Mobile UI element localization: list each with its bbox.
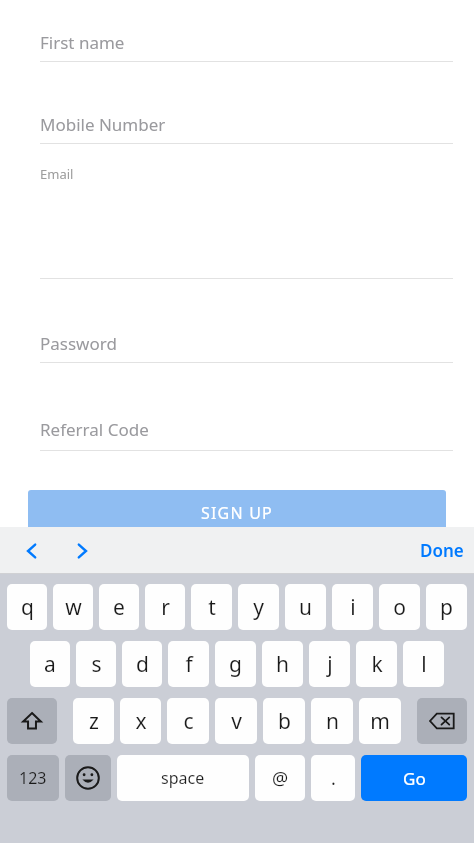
button[interactable]: Go — [361, 755, 467, 801]
button[interactable]: Emoji — [65, 755, 111, 801]
button[interactable]: Backspace — [417, 698, 467, 744]
staticText: Email — [40, 165, 74, 183]
staticText: i — [350, 593, 356, 622]
staticText: o — [393, 593, 406, 622]
staticText: c — [183, 707, 194, 736]
staticText: x — [135, 707, 147, 736]
staticText: r — [161, 593, 170, 622]
staticText: m — [370, 707, 390, 736]
staticText: e — [113, 593, 125, 622]
button[interactable]: a — [30, 641, 70, 687]
staticText: d — [136, 650, 149, 679]
button[interactable]: n — [311, 698, 353, 744]
staticText: Password — [40, 332, 117, 355]
staticText: Go — [403, 767, 426, 790]
staticText: t — [208, 593, 216, 622]
button[interactable]: l — [403, 641, 444, 687]
button[interactable]: v — [215, 698, 257, 744]
button[interactable]: k — [356, 641, 397, 687]
staticText: j — [327, 650, 333, 679]
staticText: f — [185, 650, 193, 679]
staticText: a — [44, 650, 56, 679]
button[interactable]: SIGN UP — [28, 490, 446, 536]
staticText: v — [231, 707, 242, 736]
button[interactable]: i — [332, 584, 373, 630]
button[interactable]: Shift — [7, 698, 57, 744]
staticText: k — [371, 650, 383, 679]
button[interactable]: space — [117, 755, 249, 801]
button[interactable]: c — [167, 698, 209, 744]
button[interactable]: 123 — [7, 755, 59, 801]
button[interactable]: q — [7, 584, 47, 630]
button[interactable]: y — [238, 584, 279, 630]
button[interactable]: g — [215, 641, 256, 687]
button[interactable]: . — [311, 755, 355, 801]
staticText: n — [326, 707, 339, 736]
button[interactable]: p — [426, 584, 467, 630]
staticText: l — [421, 650, 427, 679]
button[interactable]: Done — [420, 527, 464, 574]
button[interactable]: w — [53, 584, 93, 630]
button[interactable]: f — [168, 641, 209, 687]
button[interactable]: @ — [255, 755, 305, 801]
staticText: . — [331, 766, 336, 791]
button[interactable]: m — [359, 698, 401, 744]
button[interactable]: Previous field — [10, 527, 54, 574]
staticText: y — [253, 593, 264, 622]
staticText: First name — [40, 31, 125, 54]
button[interactable]: h — [262, 641, 303, 687]
staticText: q — [21, 593, 34, 622]
staticText: Referral Code — [40, 418, 149, 441]
staticText: s — [91, 650, 102, 679]
button[interactable]: j — [309, 641, 350, 687]
button[interactable]: o — [379, 584, 420, 630]
button[interactable]: d — [122, 641, 162, 687]
staticText: w — [65, 593, 82, 622]
button[interactable]: x — [120, 698, 161, 744]
button[interactable]: s — [76, 641, 116, 687]
staticText: z — [89, 707, 99, 736]
button[interactable]: z — [73, 698, 114, 744]
button[interactable]: e — [99, 584, 139, 630]
staticText: b — [278, 707, 291, 736]
button[interactable]: b — [263, 698, 305, 744]
staticText: SIGN UP — [201, 502, 273, 524]
button[interactable]: t — [191, 584, 232, 630]
staticText: 123 — [19, 767, 47, 789]
button[interactable]: Next field — [60, 527, 104, 574]
staticText: h — [276, 650, 289, 679]
staticText: g — [229, 650, 242, 679]
staticText: u — [299, 593, 312, 622]
staticText: p — [440, 593, 453, 622]
staticText: Done — [420, 539, 464, 562]
button[interactable]: r — [145, 584, 185, 630]
staticText: Mobile Number — [40, 113, 166, 136]
button[interactable]: u — [285, 584, 326, 630]
staticText: space — [161, 767, 205, 789]
staticText: @ — [272, 766, 289, 791]
